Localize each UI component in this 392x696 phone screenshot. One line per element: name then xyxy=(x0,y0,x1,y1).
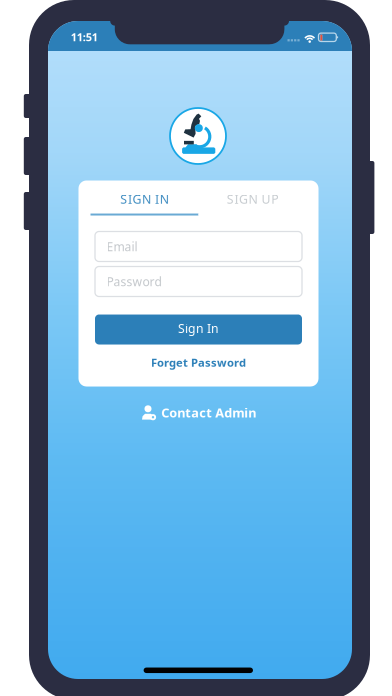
button[interactable]: Contact Admin xyxy=(142,404,256,421)
staticText: Contact Admin xyxy=(161,404,256,421)
staticText: SIGN UP xyxy=(227,191,278,207)
staticText: Sign In xyxy=(178,320,219,336)
staticText: SIGN IN xyxy=(120,191,169,207)
staticText: Email xyxy=(106,238,137,255)
staticText: 11:51 xyxy=(71,29,98,44)
staticText: Password xyxy=(106,273,161,290)
button[interactable]: Forget Password xyxy=(151,355,246,370)
staticText: Forget Password xyxy=(151,355,246,370)
button[interactable]: SIGN IN xyxy=(90,184,198,215)
button[interactable]: SIGN UP xyxy=(198,184,306,215)
button[interactable]: Sign In xyxy=(95,314,302,344)
